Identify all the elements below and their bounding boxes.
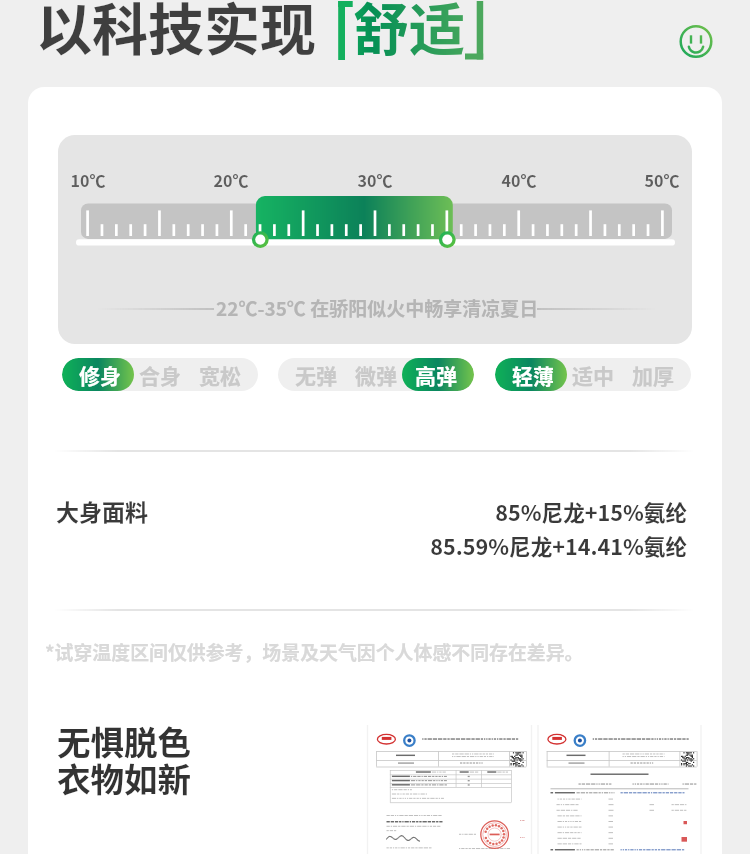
staticText: 85%尼龙+15%氨纶 85.59%尼龙+14.41%氨纶 [300,496,687,561]
staticText: 宽松 [199,360,241,390]
staticText: *试穿温度区间仅供参考，场景及天气因个人体感不同存在差异。 [45,638,584,665]
staticText: 50℃ [617,168,707,191]
staticText: 22℃-35℃ 在骄阳似火中畅享清凉夏日 [216,294,539,322]
staticText: 40℃ [474,168,564,191]
staticText: 20℃ [186,168,276,191]
staticText: 大身面料 [56,494,148,527]
staticText: 修身 [79,360,121,390]
button[interactable]: 微弹 [346,358,406,391]
button[interactable]: 无弹 [278,358,346,391]
staticText: 轻薄 [512,360,554,390]
staticText: 合身 [139,360,181,390]
staticText: 30℃ [330,168,420,191]
button[interactable]: 轻薄 [495,358,567,391]
button[interactable]: 修身 [62,358,134,391]
staticText: 以科技实现 [36,0,316,66]
staticText: 微弹 [355,360,397,390]
staticText: 舒适 [353,0,465,66]
staticText: 无惧脱色 衣物如新 [57,716,191,801]
button[interactable]: 合身 [130,358,190,391]
button[interactable]: 舒适 comfort badge [673,19,719,65]
button[interactable]: 宽松 [190,358,258,391]
staticText: 高弹 [415,360,457,390]
staticText: 加厚 [632,360,674,390]
staticText: 适中 [572,360,614,390]
button[interactable]: 高弹 [402,358,474,391]
staticText: 无弹 [295,360,337,390]
button[interactable]: 适中 [563,358,623,391]
button[interactable]: 加厚 [623,358,691,391]
staticText: 10℃ [43,168,133,191]
